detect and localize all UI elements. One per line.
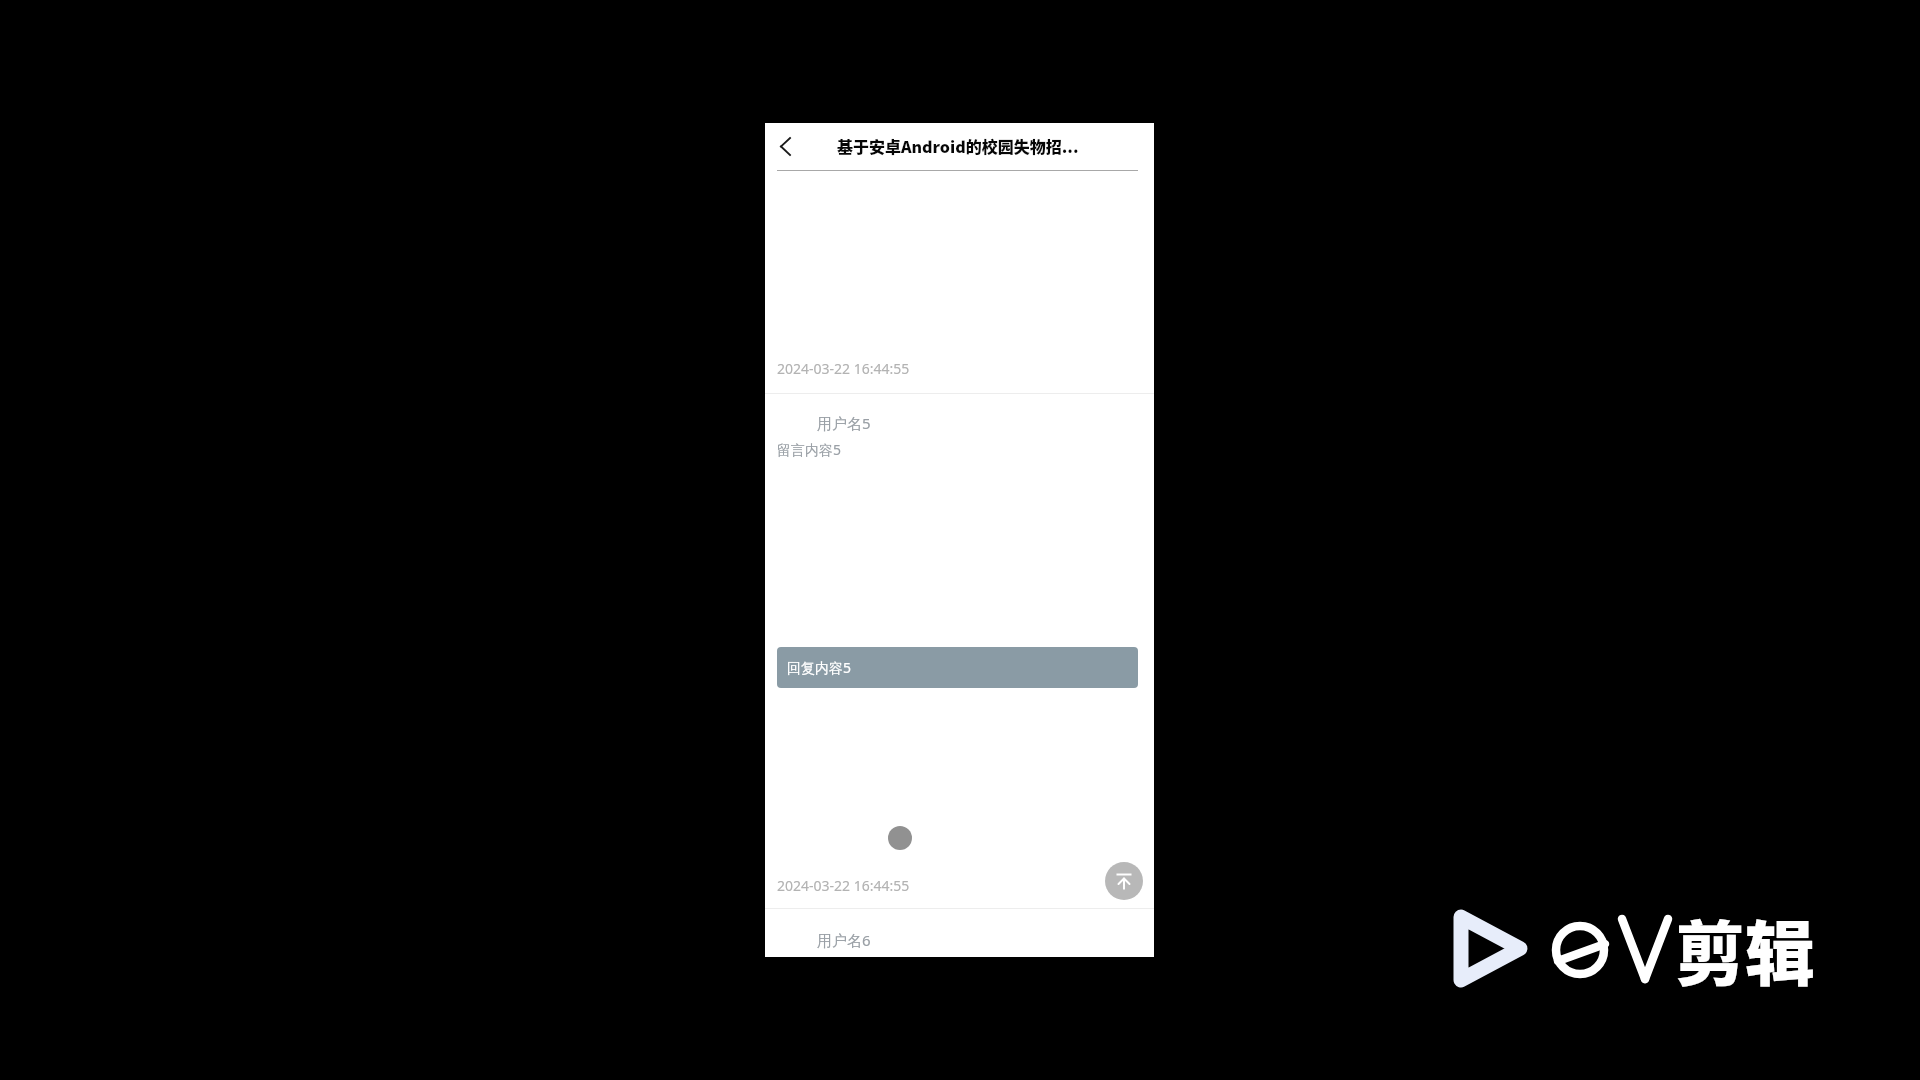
button[interactable]: Back (771, 135, 795, 159)
staticText: 基于安卓Android的校园失物招... (837, 134, 1079, 157)
staticText: 用户名6 (817, 930, 871, 950)
button[interactable]: 回复内容5 (777, 647, 1138, 688)
staticText: 留言内容5 (777, 440, 842, 459)
staticText: 2024-03-22 16:44:55 (777, 876, 910, 895)
staticText: 用户名5 (817, 413, 871, 433)
button[interactable]: Scroll to top (1105, 862, 1143, 900)
staticText: 回复内容5 (787, 658, 852, 677)
staticText: 剪辑 (1675, 899, 1815, 1000)
staticText: 2024-03-22 16:44:55 (777, 359, 910, 378)
